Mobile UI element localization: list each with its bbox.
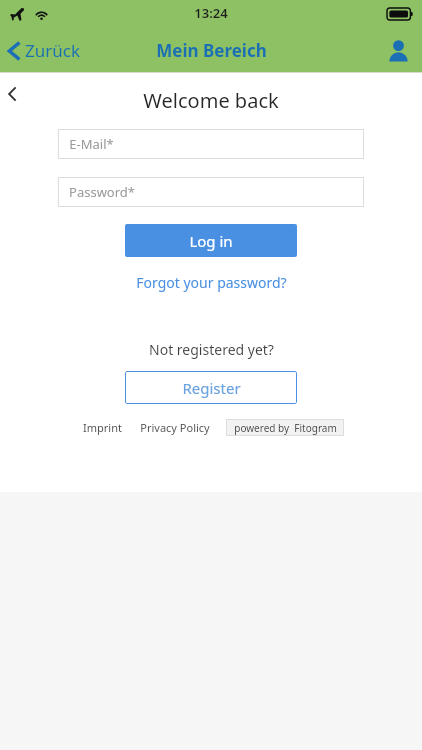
button[interactable]: Account [375,31,422,70]
staticText: Forgot your password? [136,273,287,292]
button[interactable]: Log in [125,224,297,257]
button[interactable]: Register [125,371,297,404]
staticText: Privacy Policy [140,420,210,435]
staticText: Register [182,378,241,398]
button[interactable]: Privacy Policy [136,418,214,437]
staticText: Mein Bereich [156,39,267,62]
button[interactable]: Back [2,80,23,108]
button[interactable]: powered by Fitogram [226,419,344,436]
staticText: Not registered yet? [149,340,274,359]
button[interactable]: Imprint [79,418,126,437]
staticText: Zurück [25,39,80,62]
staticText: Log in [189,231,233,251]
staticText: Imprint [83,420,122,435]
staticText: 13:24 [194,4,228,22]
button[interactable]: Forgot your password? [128,270,295,295]
staticText: powered by Fitogram [234,421,337,435]
button[interactable]: E-Mail* [58,129,364,159]
button[interactable]: Zurück [0,33,92,68]
staticText: Welcome back [143,87,279,114]
button[interactable]: Password* [58,177,364,207]
staticText: Password* [69,183,135,201]
staticText: E-Mail* [69,135,114,153]
